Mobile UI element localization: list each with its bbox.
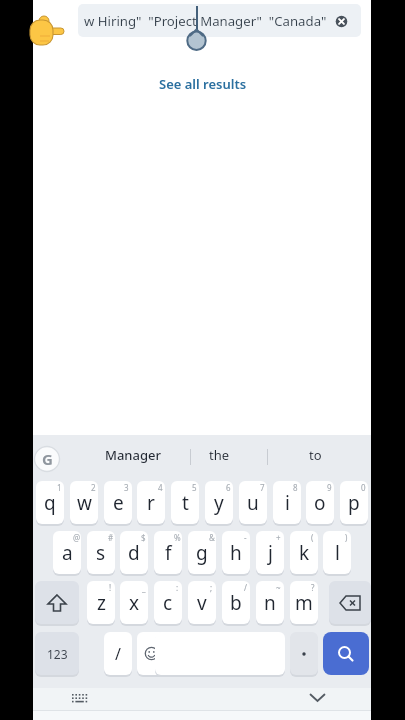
staticText: / bbox=[115, 643, 121, 665]
staticText: 9 bbox=[327, 482, 332, 493]
staticText: ? bbox=[311, 582, 315, 593]
button[interactable]: n bbox=[256, 581, 284, 624]
staticText: i bbox=[285, 490, 290, 516]
button[interactable]: t bbox=[171, 481, 199, 524]
staticText: c bbox=[163, 590, 173, 616]
staticText: y bbox=[214, 490, 224, 516]
button[interactable]: o bbox=[306, 481, 334, 524]
staticText: 123 bbox=[47, 646, 68, 662]
button[interactable]: g bbox=[188, 531, 216, 574]
staticText: 5 bbox=[192, 482, 197, 493]
staticText: the bbox=[209, 446, 230, 464]
button[interactable]: Manager bbox=[83, 438, 183, 472]
button[interactable] bbox=[35, 581, 79, 624]
staticText: 2 bbox=[91, 482, 96, 493]
staticText: o bbox=[314, 490, 326, 516]
staticText: g bbox=[196, 540, 208, 566]
button[interactable]: k bbox=[290, 531, 318, 574]
button[interactable]: v bbox=[188, 581, 216, 624]
button[interactable]: a bbox=[53, 531, 81, 574]
staticText: z bbox=[97, 590, 106, 616]
button[interactable] bbox=[333, 13, 350, 30]
button[interactable]: f bbox=[154, 531, 182, 574]
button[interactable]: e bbox=[104, 481, 132, 524]
staticText: $ bbox=[141, 532, 146, 543]
button[interactable]: z bbox=[87, 581, 115, 624]
staticText: j bbox=[268, 540, 273, 566]
button[interactable]: y bbox=[205, 481, 233, 524]
staticText: to bbox=[309, 446, 322, 464]
staticText: % bbox=[174, 532, 181, 543]
button[interactable]: 123 bbox=[35, 632, 79, 675]
button[interactable]: i bbox=[273, 481, 301, 524]
button[interactable]: See all results bbox=[159, 75, 247, 93]
staticText: m bbox=[295, 590, 313, 616]
staticText: s bbox=[96, 540, 106, 566]
staticText: / bbox=[244, 582, 247, 593]
button[interactable]: d bbox=[120, 531, 148, 574]
button[interactable]: l bbox=[323, 531, 351, 574]
button[interactable]: j bbox=[256, 531, 284, 574]
staticText: ( bbox=[311, 532, 314, 543]
staticText: h bbox=[230, 540, 242, 566]
button[interactable]: w bbox=[70, 481, 98, 524]
staticText: : bbox=[176, 582, 179, 593]
staticText: G bbox=[42, 449, 53, 469]
staticText: ) bbox=[345, 532, 348, 543]
staticText: p bbox=[348, 490, 360, 516]
button[interactable]: r bbox=[137, 481, 165, 524]
staticText: ~ bbox=[276, 582, 281, 593]
staticText: See all results bbox=[159, 75, 247, 93]
staticText: 4 bbox=[158, 482, 163, 493]
staticText: ! bbox=[109, 582, 112, 593]
staticText: & bbox=[209, 532, 215, 543]
staticText: 6 bbox=[226, 482, 231, 493]
staticText: x bbox=[129, 590, 140, 616]
button[interactable] bbox=[323, 632, 369, 675]
button[interactable]: s bbox=[87, 531, 115, 574]
button[interactable] bbox=[72, 694, 88, 705]
button[interactable]: to bbox=[265, 438, 365, 472]
staticText: - bbox=[244, 532, 247, 543]
button[interactable]: c bbox=[154, 581, 182, 624]
button[interactable]: the bbox=[169, 438, 269, 472]
staticText: Manager bbox=[105, 446, 161, 464]
staticText: 1 bbox=[57, 482, 62, 493]
staticText: 3 bbox=[124, 482, 129, 493]
button[interactable] bbox=[309, 692, 326, 704]
staticText: v bbox=[197, 590, 207, 616]
staticText: w bbox=[77, 490, 92, 516]
staticText: e bbox=[113, 490, 124, 516]
button[interactable]: b bbox=[222, 581, 250, 624]
staticText: d bbox=[128, 540, 140, 566]
staticText: f bbox=[165, 540, 172, 566]
staticText: u bbox=[247, 490, 259, 516]
staticText: q bbox=[44, 490, 56, 516]
button[interactable]: m bbox=[290, 581, 318, 624]
button[interactable]: q bbox=[36, 481, 64, 524]
button[interactable]: x bbox=[120, 581, 148, 624]
button[interactable]: h bbox=[222, 531, 250, 574]
button[interactable]: p bbox=[340, 481, 368, 524]
button[interactable]: G bbox=[34, 446, 60, 472]
button[interactable]: / bbox=[104, 632, 132, 675]
staticText: + bbox=[276, 532, 281, 543]
button[interactable]: u bbox=[239, 481, 267, 524]
staticText: w Hiring" "Project Manager" "Canada" bbox=[84, 12, 327, 30]
staticText: a bbox=[62, 540, 73, 566]
staticText: t bbox=[182, 490, 189, 516]
staticText: n bbox=[264, 590, 276, 616]
staticText: r bbox=[147, 490, 155, 516]
staticText: 0 bbox=[361, 482, 366, 493]
button[interactable] bbox=[290, 632, 318, 675]
button[interactable] bbox=[329, 581, 371, 624]
staticText: _ bbox=[142, 582, 146, 593]
staticText: ; bbox=[210, 582, 213, 593]
button[interactable] bbox=[137, 632, 165, 675]
staticText: 7 bbox=[260, 482, 265, 493]
staticText: # bbox=[108, 532, 114, 543]
button[interactable]: w Hiring" "Project Manager" "Canada" bbox=[78, 4, 361, 37]
staticText: 8 bbox=[293, 482, 298, 493]
staticText: b bbox=[230, 590, 242, 616]
